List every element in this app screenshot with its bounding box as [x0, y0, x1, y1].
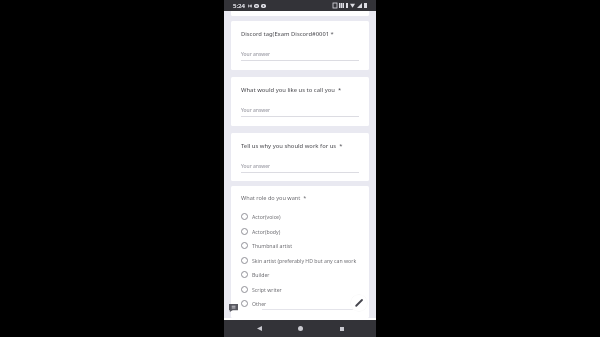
button[interactable]: Script writer	[241, 283, 362, 295]
button[interactable]: What would you like us to call you *	[231, 77, 369, 126]
button[interactable]: Feedback	[229, 304, 238, 312]
button[interactable]: Thumbnail artist	[241, 239, 362, 251]
staticText: Your answer	[241, 107, 271, 114]
button[interactable]: Edit	[350, 294, 368, 312]
staticText: Actor(body)	[252, 228, 281, 235]
button[interactable]: Skin artist (preferably HD but any can w…	[241, 254, 362, 266]
staticText: Tell us why you should work for us *	[241, 142, 343, 150]
button[interactable]: Discord tag(Exam Discord#0001 *	[231, 21, 369, 70]
button[interactable]: Actor(body)	[241, 225, 362, 237]
staticText: Thumbnail artist	[252, 242, 293, 249]
staticText: Script writer	[252, 286, 282, 293]
staticText: What would you like us to call you *	[241, 86, 342, 94]
button[interactable]: Recent apps	[330, 320, 354, 337]
staticText: Your answer	[241, 51, 271, 58]
button[interactable]: Home	[288, 320, 312, 337]
staticText: Discord tag(Exam Discord#0001 *	[241, 30, 334, 38]
staticText: Skin artist (preferably HD but any can w…	[252, 257, 357, 264]
button[interactable]: Back	[247, 320, 271, 337]
staticText: Builder	[252, 271, 270, 278]
staticText: Actor(voice)	[252, 213, 281, 220]
button[interactable]: Other	[241, 297, 362, 309]
staticText: Your answer	[241, 163, 271, 170]
button[interactable]: Actor(voice)	[241, 210, 362, 222]
button[interactable]: Tell us why you should work for us *	[231, 133, 369, 181]
staticText: What role do you want *	[241, 194, 307, 202]
button[interactable]: Builder	[241, 268, 362, 280]
staticText: Other	[252, 300, 267, 307]
staticText: 5:24	[233, 2, 245, 10]
